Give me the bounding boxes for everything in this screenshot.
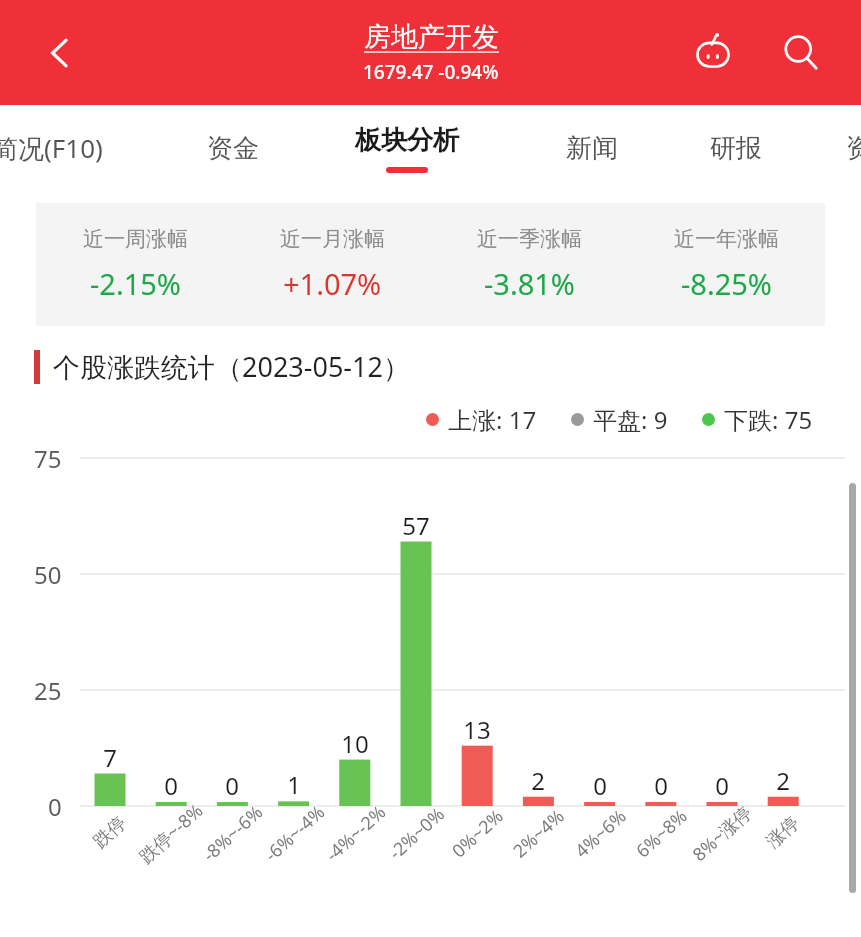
button[interactable]: 研报 bbox=[710, 105, 762, 191]
staticText: 资 bbox=[846, 132, 861, 165]
staticText: 近一月涨幅 bbox=[280, 226, 385, 252]
button[interactable]: 近一年涨幅 bbox=[628, 226, 825, 303]
staticText: +1.07% bbox=[283, 264, 382, 303]
staticText: 板块分析 bbox=[355, 124, 459, 157]
staticText: -8.25% bbox=[681, 264, 772, 303]
staticText: 房地产开发 bbox=[364, 20, 499, 54]
staticText: -3.81% bbox=[484, 264, 575, 303]
staticText: 0%~2% bbox=[446, 804, 509, 863]
staticText: 1679.47 -0.94% bbox=[363, 59, 499, 85]
staticText: 4%~6% bbox=[569, 804, 632, 863]
staticText: 25 bbox=[34, 674, 62, 707]
staticText: 平盘: 9 bbox=[593, 403, 668, 436]
staticText: 涨停 bbox=[762, 812, 804, 853]
staticText: 1 bbox=[287, 768, 301, 801]
staticText: 跌停 bbox=[89, 812, 131, 853]
staticText: 跌停~-8% bbox=[134, 798, 208, 869]
staticText: 资金 bbox=[207, 132, 259, 165]
staticText: -8%~-6% bbox=[197, 800, 268, 867]
staticText: 6%~8% bbox=[630, 804, 693, 863]
staticText: 50 bbox=[34, 558, 62, 591]
staticText: -2.15% bbox=[90, 264, 181, 303]
staticText: 新闻 bbox=[566, 132, 618, 165]
staticText: 57 bbox=[402, 509, 430, 542]
staticText: 2%~4% bbox=[507, 804, 570, 863]
button[interactable]: 近一季涨幅 bbox=[431, 226, 628, 303]
staticText: 下跌: 75 bbox=[724, 403, 813, 436]
button[interactable]: 资 bbox=[846, 105, 861, 191]
button[interactable]: 资金 bbox=[207, 105, 259, 191]
button[interactable]: Back bbox=[34, 27, 86, 79]
staticText: 75 bbox=[34, 442, 62, 475]
button[interactable]: 板块分析 bbox=[355, 105, 459, 191]
staticText: 0 bbox=[48, 790, 62, 823]
staticText: 0 bbox=[654, 769, 668, 802]
staticText: 近一年涨幅 bbox=[674, 226, 779, 252]
staticText: 近一周涨幅 bbox=[83, 226, 188, 252]
staticText: 7 bbox=[103, 741, 117, 774]
staticText: 近一季涨幅 bbox=[477, 226, 582, 252]
staticText: 10 bbox=[341, 727, 369, 760]
staticText: -6%~-4% bbox=[259, 800, 330, 867]
staticText: 0 bbox=[225, 769, 239, 802]
staticText: 0 bbox=[593, 769, 607, 802]
button[interactable]: Search bbox=[773, 25, 829, 81]
staticText: -2%~0% bbox=[383, 802, 450, 865]
staticText: 简况(F10) bbox=[0, 130, 103, 166]
staticText: 2 bbox=[776, 764, 790, 797]
staticText: 0 bbox=[715, 769, 729, 802]
staticText: 研报 bbox=[710, 132, 762, 165]
button[interactable]: 新闻 bbox=[566, 105, 618, 191]
staticText: 8%~涨停 bbox=[687, 800, 757, 867]
staticText: 13 bbox=[463, 713, 491, 746]
button[interactable]: 近一月涨幅 bbox=[234, 226, 431, 303]
button[interactable]: 近一周涨幅 bbox=[36, 226, 234, 303]
button[interactable]: Assistant bbox=[685, 25, 741, 81]
button[interactable]: 简况(F10) bbox=[0, 105, 103, 191]
staticText: 0 bbox=[164, 769, 178, 802]
staticText: 2 bbox=[531, 764, 545, 797]
staticText: -4%~-2% bbox=[320, 800, 391, 867]
staticText: 个股涨跌统计（2023-05-12） bbox=[53, 348, 410, 385]
staticText: 上涨: 17 bbox=[448, 403, 537, 436]
